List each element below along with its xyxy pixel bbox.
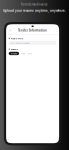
button[interactable]: Sent bbox=[21, 52, 25, 55]
button[interactable]: Back bbox=[8, 29, 12, 32]
button[interactable]: Paid bbox=[27, 52, 31, 55]
staticText: from demos/invoice bbox=[21, 3, 48, 6]
staticText: Upload your resume anytime, anywhere. bbox=[3, 9, 66, 13]
staticText: Trade Title bbox=[11, 37, 23, 40]
staticText: Status bbox=[11, 47, 18, 51]
button[interactable]: Draft bbox=[9, 52, 19, 55]
staticText: Sent bbox=[21, 52, 25, 55]
staticText: e.g. Spring Cleanup bbox=[10, 41, 29, 44]
staticText: Draft bbox=[11, 52, 17, 55]
staticText: Tender Information bbox=[18, 29, 47, 32]
staticText: Paid bbox=[27, 52, 31, 55]
